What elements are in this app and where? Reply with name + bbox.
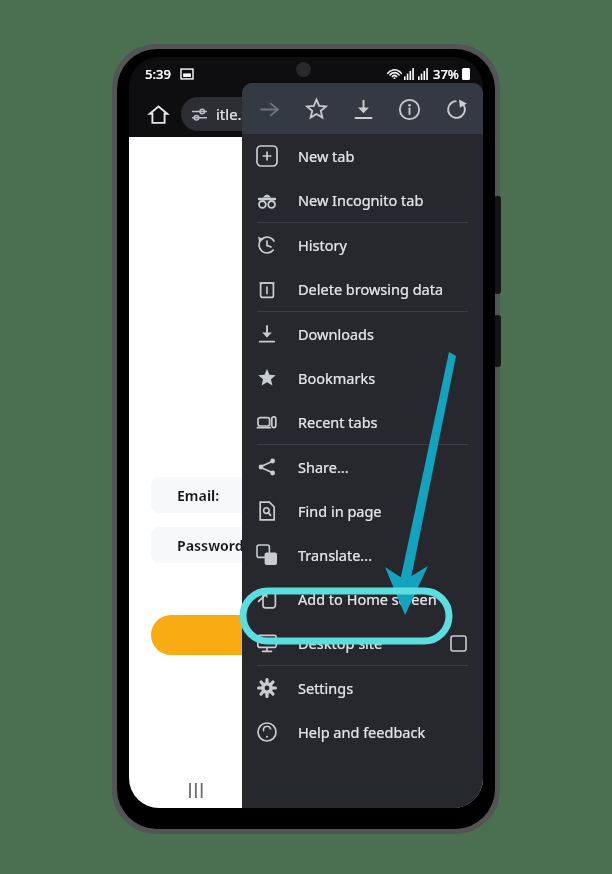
staticText: Help and feedback: [298, 722, 483, 742]
button[interactable]: Password:: [151, 527, 461, 563]
button[interactable]: New tab: [242, 134, 483, 178]
button[interactable]: Sign in: [151, 615, 461, 655]
button[interactable]: New Incognito tab: [242, 178, 483, 222]
staticText: Password:: [177, 536, 248, 555]
button[interactable]: Help and feedback: [242, 710, 483, 754]
staticText: Use our plat: [280, 324, 361, 343]
staticText: Email:: [177, 486, 220, 505]
staticText: Add to Home screen: [298, 589, 483, 609]
staticText: Sign in: [281, 625, 331, 645]
staticText: Share...: [298, 457, 483, 477]
button[interactable]: Bookmarks: [242, 356, 483, 400]
staticText: 37%: [433, 65, 459, 83]
button[interactable]: Desktop site: [242, 621, 483, 665]
staticText: New tab: [298, 146, 483, 166]
staticText: Downloads: [298, 324, 483, 344]
button[interactable]: Settings: [242, 666, 483, 710]
button[interactable]: Recents: [177, 773, 217, 808]
button[interactable]: Email:: [151, 477, 461, 513]
staticText: Find in page: [298, 501, 483, 521]
button[interactable]: Translate...: [242, 533, 483, 577]
staticText: At Yo: [276, 273, 348, 310]
staticText: Remember: [301, 581, 369, 599]
button[interactable]: Recent tabs: [242, 400, 483, 444]
staticText: Delete browsing data: [298, 279, 483, 299]
button[interactable]: Bookmark: [296, 89, 336, 129]
staticText: Translate...: [298, 545, 483, 565]
staticText: Access instan: [284, 425, 366, 443]
staticText: Desktop site: [298, 633, 451, 653]
staticText: Settings: [298, 678, 483, 698]
button[interactable]: Add to Home screen: [242, 577, 483, 621]
staticText: History: [298, 235, 483, 255]
button[interactable]: Reload: [436, 89, 476, 129]
button[interactable]: Download: [343, 89, 383, 129]
staticText: 5:39: [145, 65, 171, 83]
staticText: Insta: [280, 233, 352, 270]
staticText: New Incognito tab: [298, 190, 483, 210]
button[interactable]: Delete browsing data: [242, 267, 483, 311]
button[interactable]: Forward: [249, 89, 289, 129]
button[interactable]: Home: [141, 97, 175, 131]
button[interactable]: Find in page: [242, 489, 483, 533]
button[interactable]: Remember: [276, 581, 369, 599]
button[interactable]: History: [242, 223, 483, 267]
staticText: Bookmarks: [298, 368, 483, 388]
button[interactable]: Share...: [242, 445, 483, 489]
button[interactable]: Downloads: [242, 312, 483, 356]
staticText: itle.tit: [216, 104, 257, 124]
staticText: Recent tabs: [298, 412, 483, 432]
button[interactable]: Page info: [389, 89, 429, 129]
button[interactable]: itle.tit: [181, 97, 431, 131]
